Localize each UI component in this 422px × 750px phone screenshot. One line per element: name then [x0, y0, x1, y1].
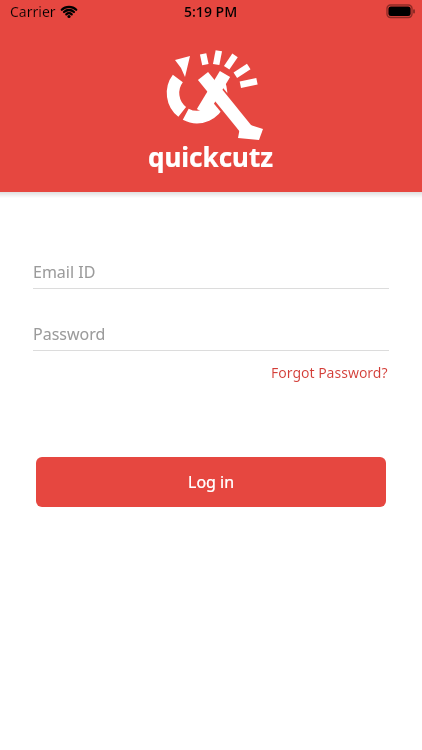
staticText: Password: [33, 323, 106, 345]
staticText: quickcutz: [148, 139, 274, 174]
staticText: Email ID: [33, 261, 96, 283]
staticText: Carrier: [10, 2, 56, 21]
button[interactable]: Password: [33, 323, 389, 351]
staticText: 5:19 PM: [184, 2, 238, 21]
staticText: Log in: [188, 471, 235, 493]
button[interactable]: Email ID: [33, 261, 389, 289]
staticText: Forgot Password?: [271, 363, 388, 382]
button[interactable]: Log in: [36, 457, 386, 507]
button[interactable]: Forgot Password?: [271, 363, 388, 382]
